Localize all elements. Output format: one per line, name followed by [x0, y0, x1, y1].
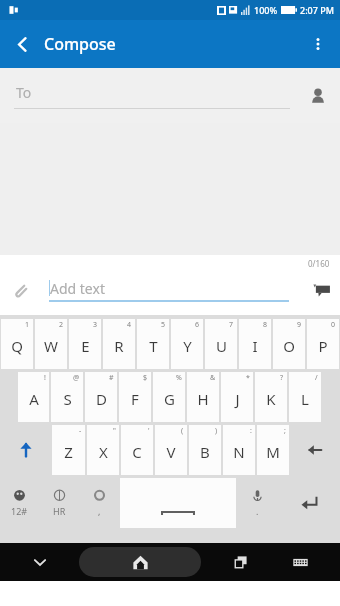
staticText: 7	[229, 320, 234, 330]
button[interactable]: Backspace	[291, 425, 339, 475]
staticText: .	[256, 505, 259, 517]
button[interactable]: More options	[296, 22, 340, 66]
staticText: 0	[331, 320, 336, 330]
button[interactable]: Back	[0, 22, 44, 66]
button[interactable]: !	[18, 372, 49, 422]
staticText: $	[143, 373, 148, 383]
button[interactable]: Voice input	[238, 478, 276, 528]
button[interactable]: 8	[239, 319, 271, 369]
staticText: K	[266, 389, 276, 409]
button[interactable]: "	[87, 425, 119, 475]
staticText: Z	[64, 442, 73, 462]
staticText: 9	[297, 320, 302, 330]
button[interactable]: &	[187, 372, 219, 422]
staticText: #	[109, 373, 114, 383]
staticText: M	[266, 442, 280, 462]
button[interactable]: )	[189, 425, 221, 475]
staticText: ;	[284, 426, 286, 436]
button[interactable]: (	[155, 425, 187, 475]
button[interactable]: 4	[103, 319, 135, 369]
button[interactable]: 9	[273, 319, 305, 369]
staticText: Compose	[44, 33, 116, 55]
staticText: )	[215, 426, 218, 436]
staticText: Y	[183, 336, 192, 356]
staticText: S	[63, 389, 72, 409]
staticText: L	[301, 389, 309, 409]
staticText: 8	[263, 320, 268, 330]
button[interactable]: 1	[1, 319, 33, 369]
button[interactable]: Back	[20, 543, 60, 581]
staticText: 2	[59, 320, 64, 330]
staticText: !	[44, 373, 46, 383]
button[interactable]: #	[85, 372, 117, 422]
staticText: 1	[25, 320, 30, 330]
staticText: W	[44, 336, 58, 356]
button[interactable]: 7	[205, 319, 237, 369]
button[interactable]: :	[223, 425, 255, 475]
staticText: HR	[53, 505, 66, 517]
staticText: P	[318, 336, 328, 356]
staticText: T	[149, 336, 158, 356]
staticText: -	[79, 426, 82, 436]
button[interactable]: '	[121, 425, 153, 475]
button[interactable]: Pick contact	[298, 76, 338, 116]
staticText: '	[148, 426, 150, 436]
button[interactable]: ;	[257, 425, 289, 475]
staticText: X	[99, 442, 108, 462]
button[interactable]: Attach	[3, 273, 37, 307]
staticText: /	[315, 373, 318, 383]
button[interactable]: To	[0, 68, 340, 123]
staticText: F	[131, 389, 139, 409]
staticText: 5	[161, 320, 166, 330]
button[interactable]: Language	[40, 478, 78, 528]
button[interactable]: Enter	[278, 478, 339, 528]
staticText: J	[235, 389, 240, 409]
staticText: Add text	[50, 279, 105, 298]
button[interactable]: -	[52, 425, 85, 475]
staticText: O	[283, 336, 295, 356]
button[interactable]: Symbols	[1, 478, 38, 528]
staticText: 4	[127, 320, 132, 330]
staticText: E	[81, 336, 90, 356]
button[interactable]: Settings	[80, 478, 118, 528]
staticText: 12#	[11, 505, 28, 517]
staticText: R	[114, 336, 124, 356]
staticText: :	[250, 426, 252, 436]
button[interactable]: ?	[255, 372, 287, 422]
button[interactable]: Home	[79, 547, 201, 577]
button[interactable]: Shift	[1, 425, 50, 475]
staticText: C	[132, 442, 142, 462]
staticText: Q	[11, 336, 23, 356]
staticText: &	[210, 373, 216, 383]
staticText: N	[233, 442, 245, 462]
staticText: 0/160	[308, 258, 330, 269]
button[interactable]: 2	[35, 319, 67, 369]
staticText: 2:07 PM	[300, 4, 334, 16]
staticText: *	[246, 373, 250, 383]
staticText: (	[181, 426, 184, 436]
button[interactable]: @	[51, 372, 83, 422]
staticText: D	[96, 389, 107, 409]
staticText: H	[197, 389, 209, 409]
button[interactable]: 0	[307, 319, 339, 369]
staticText: I	[252, 336, 258, 356]
button[interactable]: %	[153, 372, 185, 422]
button[interactable]: Keyboard	[280, 543, 320, 581]
staticText: 6	[195, 320, 200, 330]
staticText: U	[216, 336, 227, 356]
button[interactable]: Space	[120, 478, 236, 528]
button[interactable]: 5	[137, 319, 169, 369]
staticText: %	[176, 373, 182, 383]
button[interactable]: Send	[304, 272, 340, 308]
button[interactable]: *	[221, 372, 253, 422]
staticText: "	[113, 426, 116, 436]
staticText: A	[29, 389, 39, 409]
staticText: ?	[280, 373, 284, 383]
button[interactable]: Recent apps	[221, 543, 261, 581]
staticText: 100%	[254, 4, 278, 16]
button[interactable]: 3	[69, 319, 101, 369]
button[interactable]: /	[289, 372, 321, 422]
button[interactable]: 6	[171, 319, 203, 369]
button[interactable]: $	[119, 372, 151, 422]
